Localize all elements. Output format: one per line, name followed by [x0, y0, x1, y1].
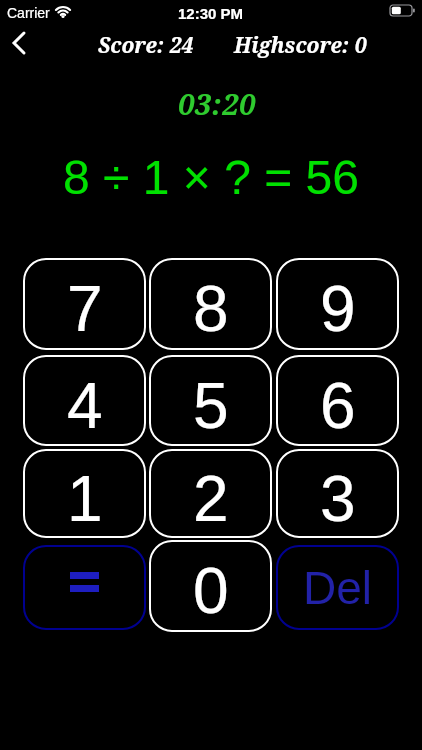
button[interactable]: 2 — [149, 449, 272, 538]
staticText: Score: 24 — [98, 31, 194, 60]
staticText: Carrier — [7, 5, 50, 21]
button[interactable]: 9 — [276, 258, 399, 350]
staticText: Highscore: 0 — [234, 31, 367, 60]
staticText: 8 — [193, 273, 229, 345]
staticText: 7 — [67, 273, 103, 345]
staticText: 2 — [193, 463, 229, 535]
button[interactable]: 1 — [23, 449, 146, 538]
button[interactable]: 5 — [149, 355, 272, 446]
staticText: 8 ÷ 1 × ? = 56 — [63, 151, 359, 205]
staticText: 12:30 PM — [178, 5, 244, 22]
staticText: 03:20 — [178, 84, 256, 118]
button[interactable]: 7 — [23, 258, 146, 350]
staticText: 9 — [320, 273, 356, 345]
staticText: 3 — [320, 463, 356, 535]
staticText: Del — [303, 562, 373, 613]
staticText: 4 — [67, 370, 103, 442]
button[interactable]: 6 — [276, 355, 399, 446]
staticText: 0 — [193, 555, 229, 627]
button[interactable]: 8 — [149, 258, 272, 350]
button[interactable] — [1, 28, 37, 58]
staticText: 5 — [193, 370, 229, 442]
button[interactable]: 3 — [276, 449, 399, 538]
staticText: 1 — [67, 463, 103, 535]
button[interactable]: 4 — [23, 355, 146, 446]
button[interactable]: 0 — [149, 540, 272, 632]
staticText: 6 — [320, 370, 356, 442]
button[interactable]: Del — [276, 545, 399, 630]
button[interactable] — [23, 545, 146, 630]
